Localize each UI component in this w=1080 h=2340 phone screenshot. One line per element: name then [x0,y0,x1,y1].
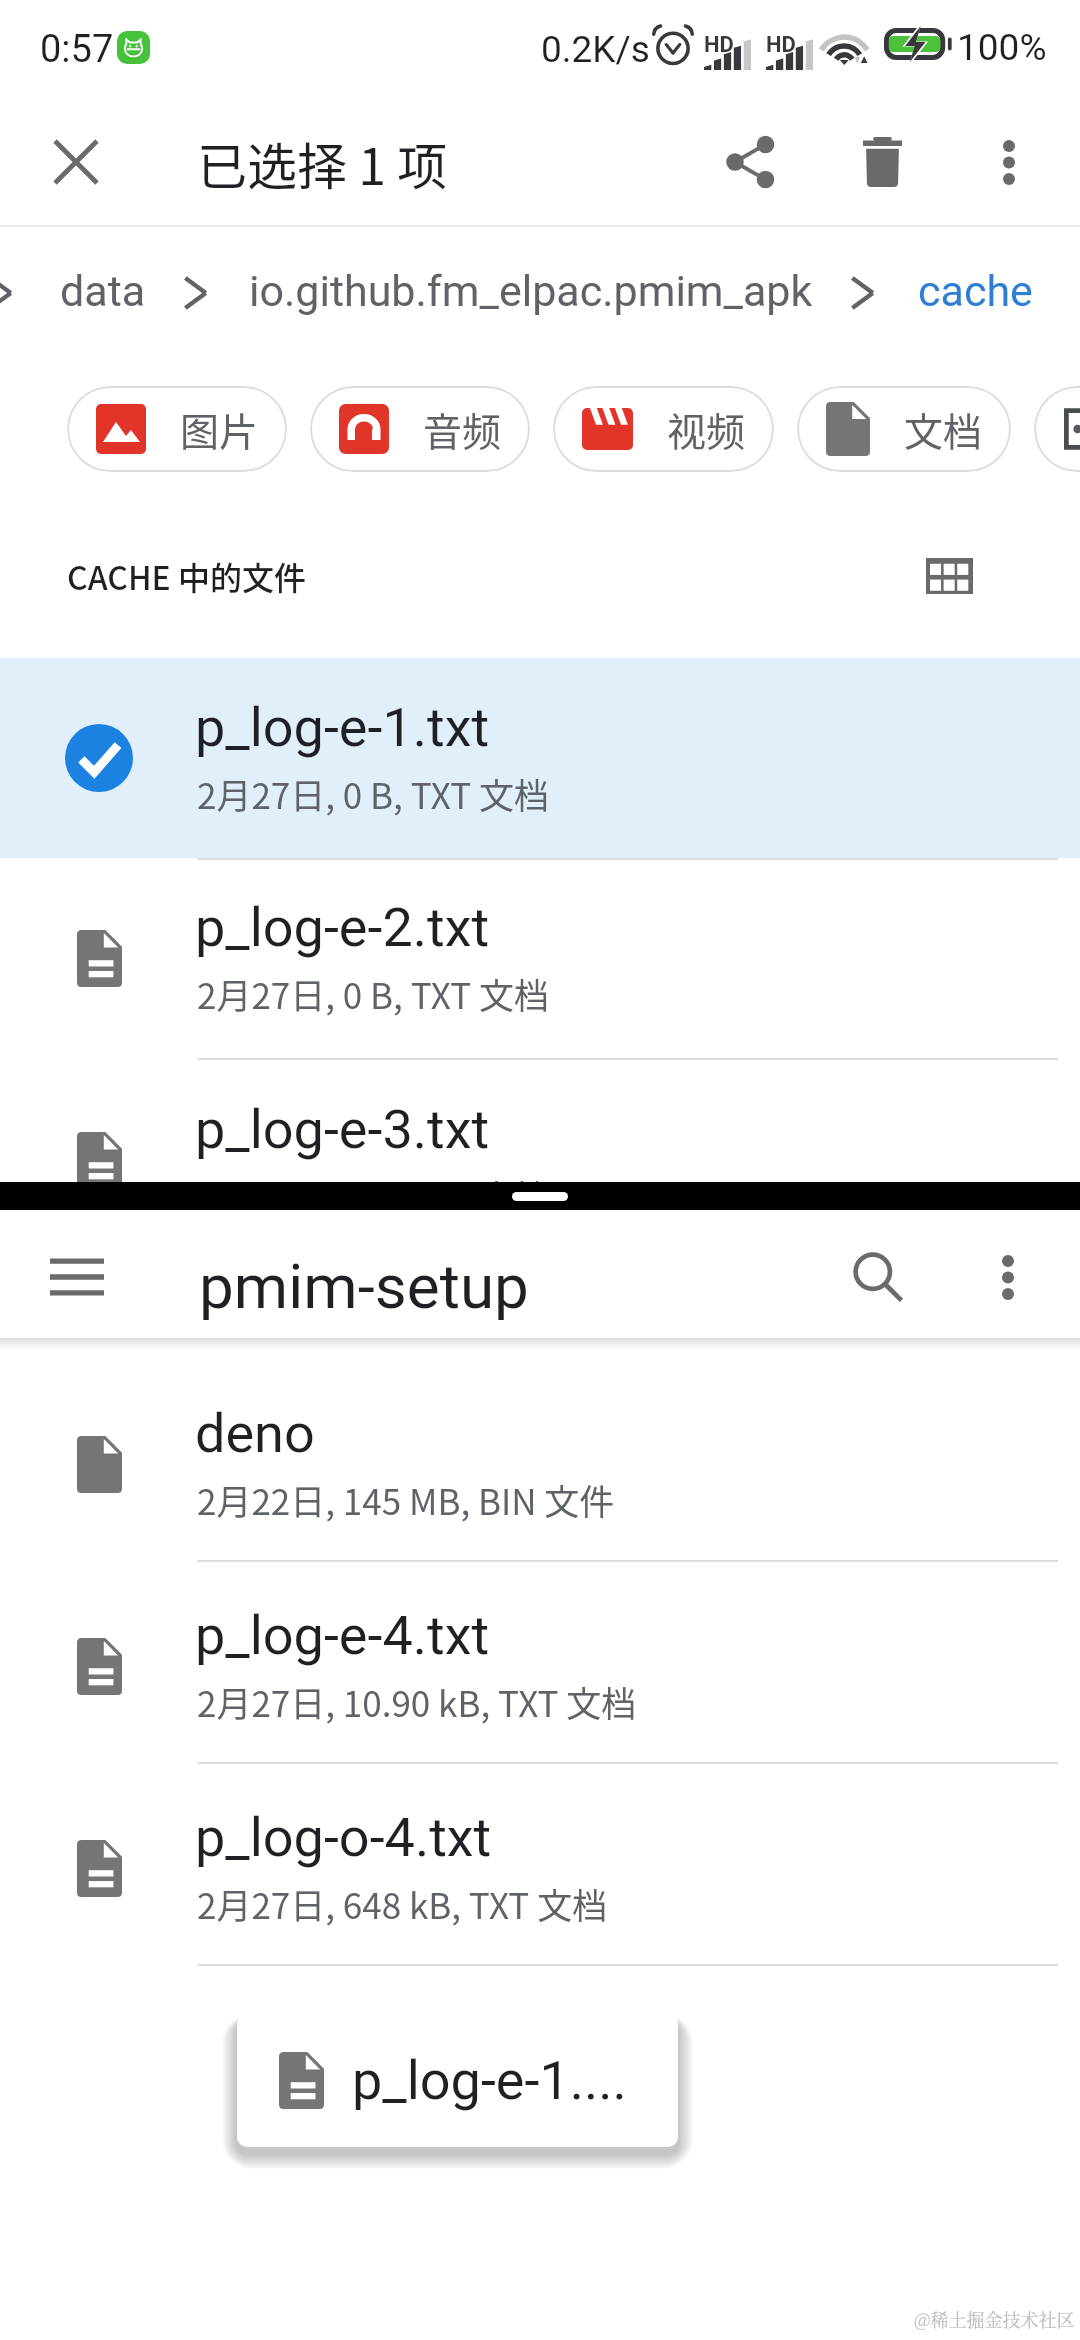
button[interactable]: More options [954,107,1064,217]
staticText: 已选择 1 项 [197,127,448,199]
staticText: 2月27日, 0 B, TXT 文档 [197,768,549,819]
staticText: deno [195,1402,315,1465]
staticText: 图片 [180,401,259,457]
button[interactable]: Share [695,107,805,217]
staticText: io.github.fm_elpac.pmim_apk [249,266,813,316]
staticText: 视频 [667,401,746,457]
staticText: 2月27日, 648 kB, TXT 文档 [197,1878,608,1929]
staticText: 2月27日, 0 B, TXT 文档 [197,968,549,1019]
button[interactable]: p_log-o-4.txt [0,1764,1080,1965]
button[interactable]: 视频 [553,386,774,472]
button[interactable]: Close [21,107,131,217]
staticText: 0:57 [40,27,114,72]
staticText: p_log-e-1.txt [195,696,490,759]
staticText: data [60,266,146,316]
staticText: pmim-setup [199,1250,529,1323]
staticText: 文档 [904,401,983,457]
staticText: p_log-o-4.txt [195,1806,492,1869]
staticText: cache [918,266,1033,316]
staticText: 音频 [423,401,502,457]
button[interactable]: p_log-e-1.... [237,2014,678,2147]
staticText: CACHE 中的文件 [67,553,307,599]
staticText: p_log-e-1.... [352,2049,627,2112]
staticText: 2月27日, 10.90 kB, TXT 文档 [197,1676,637,1727]
button[interactable]: 音频 [310,386,530,472]
staticText: @稀土掘金技术社区 [914,2306,1075,2332]
button[interactable]: Delete [827,107,937,217]
staticText: 0.2K/s [541,28,650,71]
button[interactable]: p_log-e-3.txt [0,1060,1080,1182]
button[interactable]: Grid view [913,540,985,612]
staticText: 100% [957,26,1047,69]
staticText: 2月22日, 145 MB, BIN 文件 [197,1474,615,1525]
button[interactable]: p_log-e-4.txt [0,1562,1080,1764]
button[interactable]: Search [823,1222,933,1332]
button[interactable]: p_log-e-2.txt [0,858,1080,1060]
button[interactable] [1034,386,1080,472]
button[interactable]: deno [0,1360,1080,1562]
button[interactable]: More options [953,1222,1063,1332]
staticText: HD [766,32,796,58]
staticText: 2月27日, 0 B, TXT 文档 [197,1170,549,1221]
button[interactable]: p_log-e-1.txt [0,658,1080,858]
button[interactable]: 文档 [797,386,1011,472]
staticText: HD [704,32,734,58]
staticText: p_log-e-3.txt [195,1098,490,1161]
staticText: p_log-e-4.txt [195,1604,490,1667]
staticText: p_log-e-2.txt [195,896,490,959]
button[interactable]: Menu [22,1222,132,1332]
button[interactable]: 图片 [67,386,287,472]
